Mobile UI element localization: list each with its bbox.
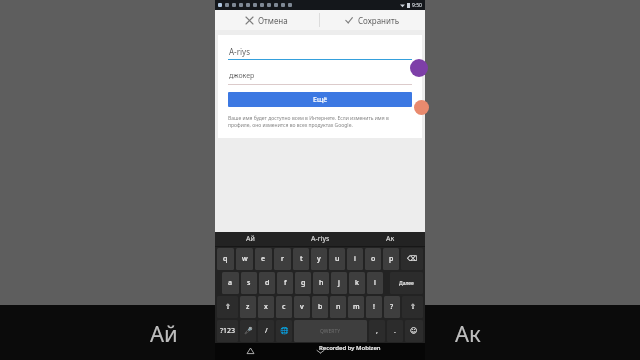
button[interactable]: ⇧ bbox=[402, 296, 423, 318]
button[interactable]: Сохранить bbox=[320, 10, 425, 30]
button[interactable]: ☺ bbox=[405, 320, 423, 342]
staticText: . bbox=[394, 326, 396, 336]
staticText: l bbox=[374, 278, 376, 288]
button[interactable]: A-riys bbox=[228, 46, 412, 60]
staticText: 🌐 bbox=[280, 327, 289, 335]
staticText: Ай bbox=[150, 318, 178, 348]
button[interactable]: ⇧ bbox=[217, 296, 238, 318]
button[interactable]: e bbox=[255, 248, 272, 270]
staticText: o bbox=[371, 254, 376, 264]
button[interactable]: h bbox=[313, 272, 329, 294]
button[interactable]: ? bbox=[384, 296, 400, 318]
button[interactable]: m bbox=[348, 296, 364, 318]
staticText: ⌫ bbox=[407, 255, 417, 263]
staticText: c bbox=[282, 302, 286, 312]
button[interactable]: s bbox=[241, 272, 257, 294]
button[interactable]: a bbox=[222, 272, 239, 294]
button[interactable]: Ещё bbox=[228, 92, 412, 107]
button[interactable]: l bbox=[367, 272, 383, 294]
button[interactable]: , bbox=[369, 320, 385, 342]
button[interactable]: Далее bbox=[390, 272, 423, 294]
staticText: Ай bbox=[246, 234, 255, 244]
button[interactable]: Отмена bbox=[215, 10, 319, 30]
button[interactable]: k bbox=[349, 272, 365, 294]
button[interactable]: y bbox=[311, 248, 327, 270]
button[interactable]: r bbox=[274, 248, 291, 270]
staticText: r bbox=[281, 254, 284, 264]
staticText: y bbox=[317, 254, 321, 264]
staticText: Recorded by Mobizen bbox=[319, 344, 381, 352]
staticText: , bbox=[376, 326, 378, 336]
button[interactable]: Recording badge bbox=[414, 100, 429, 115]
staticText: Ещё bbox=[313, 95, 328, 105]
button[interactable]: b bbox=[312, 296, 328, 318]
button[interactable]: v bbox=[294, 296, 310, 318]
staticText: джокер bbox=[229, 71, 255, 81]
staticText: b bbox=[318, 302, 323, 312]
button[interactable]: p bbox=[383, 248, 399, 270]
staticText: QWERTY bbox=[320, 328, 341, 335]
staticText: ⇧ bbox=[410, 303, 416, 311]
button[interactable]: q bbox=[217, 248, 234, 270]
button[interactable]: . bbox=[387, 320, 403, 342]
staticText: e bbox=[261, 254, 266, 264]
button[interactable]: Overlay badge bbox=[410, 59, 428, 77]
button[interactable]: Recent apps bbox=[355, 343, 425, 360]
button[interactable]: o bbox=[365, 248, 381, 270]
button[interactable]: x bbox=[258, 296, 274, 318]
button[interactable]: джокер bbox=[228, 71, 412, 85]
button[interactable]: t bbox=[293, 248, 309, 270]
staticText: k bbox=[355, 278, 359, 288]
staticText: ☺ bbox=[410, 327, 418, 335]
button[interactable]: Home bbox=[285, 343, 355, 360]
button[interactable]: g bbox=[295, 272, 311, 294]
button[interactable]: 🎤 bbox=[240, 320, 256, 342]
button[interactable]: A-riys bbox=[285, 232, 355, 246]
staticText: h bbox=[319, 278, 324, 288]
button[interactable]: ⌫ bbox=[401, 248, 423, 270]
staticText: a bbox=[228, 278, 233, 288]
staticText: 9:50 bbox=[412, 2, 422, 9]
button[interactable]: f bbox=[277, 272, 293, 294]
button[interactable]: n bbox=[330, 296, 346, 318]
button[interactable]: c bbox=[276, 296, 292, 318]
staticText: ? bbox=[390, 302, 394, 312]
button[interactable]: w bbox=[236, 248, 253, 270]
staticText: Ак bbox=[455, 318, 481, 348]
staticText: A-riys bbox=[311, 234, 330, 244]
staticText: v bbox=[300, 302, 304, 312]
button[interactable]: ?123 bbox=[217, 320, 238, 342]
staticText: j bbox=[338, 278, 340, 288]
staticText: Отмена bbox=[258, 15, 288, 26]
staticText: ?123 bbox=[220, 326, 236, 336]
button[interactable]: Ай bbox=[215, 232, 285, 246]
staticText: Ак bbox=[386, 234, 395, 244]
button[interactable]: i bbox=[347, 248, 363, 270]
button[interactable]: Space bbox=[294, 320, 367, 342]
staticText: f bbox=[284, 278, 287, 288]
staticText: 🎤 bbox=[244, 327, 253, 335]
staticText: Ваше имя будет доступно всем в Интернете… bbox=[228, 115, 412, 129]
staticText: n bbox=[336, 302, 341, 312]
button[interactable]: ! bbox=[366, 296, 382, 318]
staticText: p bbox=[389, 254, 394, 264]
button[interactable]: 🌐 bbox=[276, 320, 292, 342]
button[interactable]: / bbox=[258, 320, 274, 342]
button[interactable]: Ак bbox=[355, 232, 425, 246]
staticText: z bbox=[246, 302, 250, 312]
button[interactable]: u bbox=[329, 248, 345, 270]
staticText: s bbox=[247, 278, 251, 288]
button[interactable]: Back bbox=[215, 343, 285, 360]
staticText: A-riys bbox=[229, 46, 250, 57]
button[interactable]: z bbox=[240, 296, 256, 318]
staticText: Сохранить bbox=[358, 15, 400, 26]
button[interactable]: j bbox=[331, 272, 347, 294]
button[interactable]: d bbox=[259, 272, 275, 294]
staticText: u bbox=[335, 254, 340, 264]
staticText: g bbox=[301, 278, 306, 288]
staticText: ! bbox=[373, 302, 375, 312]
staticText: x bbox=[264, 302, 268, 312]
staticText: m bbox=[353, 302, 360, 312]
staticText: t bbox=[300, 254, 303, 264]
staticText: ⇧ bbox=[225, 303, 231, 311]
